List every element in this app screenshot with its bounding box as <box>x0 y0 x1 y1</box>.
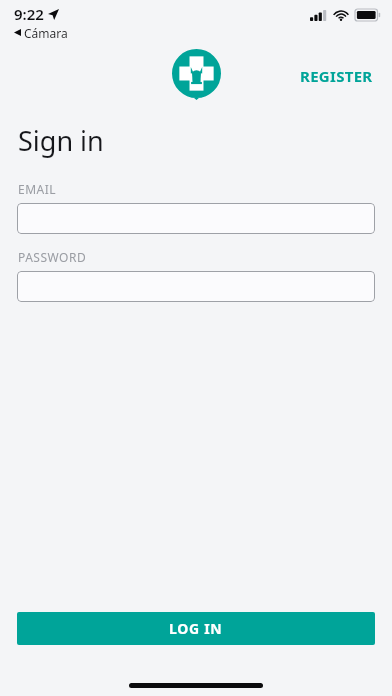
staticText: REGISTER <box>300 66 373 86</box>
staticText: LOG IN <box>169 619 223 638</box>
staticText: Cámara <box>24 25 68 40</box>
staticText: 9:22 <box>14 4 44 24</box>
button[interactable]: Password input <box>17 271 375 302</box>
button[interactable]: LOG IN <box>17 612 375 645</box>
staticText: Sign in <box>18 122 104 159</box>
staticText: PASSWORD <box>18 249 87 265</box>
button[interactable]: Email input <box>17 203 375 234</box>
staticText: EMAIL <box>18 181 57 197</box>
button[interactable]: REGISTER <box>296 62 377 90</box>
other: App logo <box>172 49 221 100</box>
